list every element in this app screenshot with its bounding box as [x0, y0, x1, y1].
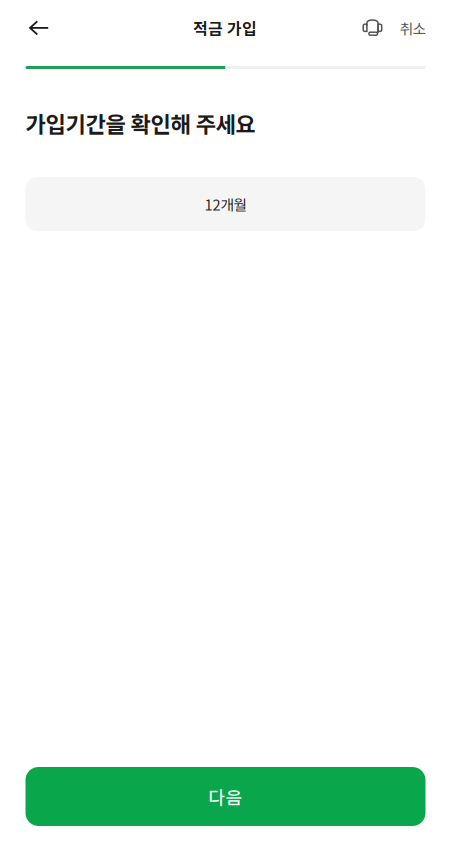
staticText: 다음 — [208, 783, 242, 810]
button[interactable]: 뒤로 — [16, 0, 62, 56]
button[interactable]: 다음 — [25, 767, 425, 826]
button[interactable]: 취소 — [394, 0, 430, 56]
button[interactable]: 고객센터 상담 — [350, 0, 394, 56]
staticText: 가입기간을 확인해 주세요 — [25, 107, 255, 139]
staticText: 취소 — [399, 17, 425, 39]
staticText: 12개월 — [204, 193, 246, 215]
button[interactable]: 12개월 — [25, 177, 425, 231]
staticText: 적금 가입 — [193, 16, 257, 40]
